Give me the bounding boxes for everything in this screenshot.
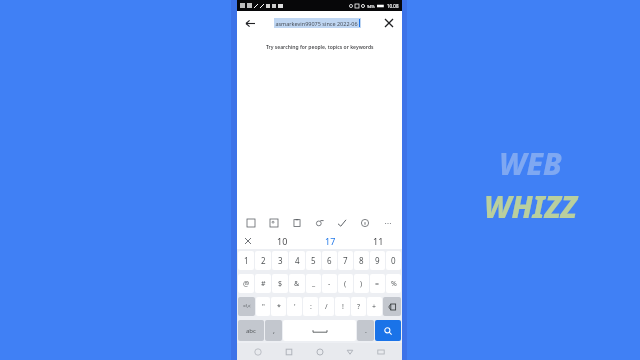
button[interactable]: Clear (381, 15, 397, 31)
staticText: asmarkevin99075 since 2022-06 (275, 20, 358, 27)
button[interactable]: Recents (279, 343, 299, 360)
staticText: / (325, 302, 328, 312)
button[interactable]: 8 (354, 251, 369, 270)
staticText: 4 (295, 255, 300, 266)
staticText: 6 (327, 255, 332, 266)
button[interactable]: 4 (289, 251, 305, 270)
button[interactable]: : (303, 297, 318, 316)
button[interactable]: % (386, 274, 401, 293)
staticText: . (365, 326, 367, 336)
staticText: = (375, 279, 380, 289)
button[interactable]: Back (242, 15, 258, 31)
button[interactable]: 9 (370, 251, 385, 270)
button[interactable]: # (255, 274, 271, 293)
button[interactable]: & (289, 274, 305, 293)
staticText: : (310, 302, 312, 312)
button[interactable]: Info (358, 216, 372, 230)
staticText: * (277, 302, 281, 312)
staticText: @ (243, 279, 250, 289)
button[interactable]: Keyboard (371, 343, 391, 360)
button[interactable]: 5 (306, 251, 321, 270)
button[interactable]: , (265, 320, 282, 341)
staticText: 5 (311, 255, 316, 266)
staticText: 94% (367, 4, 375, 9)
staticText: ) (360, 279, 363, 289)
button[interactable]: / (319, 297, 334, 316)
button[interactable]: Space (283, 320, 356, 341)
button[interactable]: ? (351, 297, 366, 316)
button[interactable]: ( (338, 274, 353, 293)
button[interactable]: GIF (244, 216, 258, 230)
button[interactable]: 6 (322, 251, 337, 270)
staticText: + (372, 302, 377, 312)
button[interactable]: Back (340, 343, 360, 360)
button[interactable]: 0 (386, 251, 401, 270)
button[interactable]: ' (287, 297, 302, 316)
staticText: $ (278, 279, 283, 289)
staticText: 11 (373, 235, 384, 247)
staticText: 17 (325, 235, 336, 247)
staticText: 3 (278, 255, 283, 266)
button[interactable]: 7 (338, 251, 353, 270)
button[interactable]: - (322, 274, 337, 293)
staticText: 9 (375, 255, 380, 266)
button[interactable]: 2 (255, 251, 271, 270)
staticText: 8 (359, 255, 364, 266)
button[interactable]: 3 (272, 251, 288, 270)
button[interactable]: ! (335, 297, 350, 316)
button[interactable]: ) (354, 274, 369, 293)
button[interactable]: _ (306, 274, 321, 293)
button[interactable]: 10 (259, 232, 306, 249)
button[interactable]: =\< (238, 297, 255, 316)
staticText: Try searching for people, topics or keyw… (266, 44, 374, 51)
button[interactable]: = (370, 274, 385, 293)
button[interactable]: Backspace (383, 297, 401, 316)
button[interactable]: abc (238, 320, 264, 341)
button[interactable]: Search (375, 320, 401, 341)
button[interactable]: Edit (335, 216, 349, 230)
button[interactable]: More (381, 216, 395, 230)
staticText: ? (357, 302, 361, 312)
button[interactable]: @ (238, 274, 254, 293)
staticText: WEB (499, 143, 562, 184)
staticText: _ (312, 279, 316, 289)
staticText: =\< (243, 303, 251, 310)
staticText: 2 (261, 255, 266, 266)
button[interactable]: * (271, 297, 286, 316)
button[interactable]: 1 (238, 251, 254, 270)
staticText: 10 (277, 235, 288, 247)
button[interactable]: " (256, 297, 270, 316)
button[interactable]: Voice (237, 232, 259, 249)
staticText: - (328, 279, 331, 289)
button[interactable]: Translate (313, 216, 327, 230)
button[interactable]: Sticker (267, 216, 281, 230)
staticText: , (273, 326, 275, 336)
button[interactable]: + (367, 297, 382, 316)
staticText: ' (294, 302, 296, 312)
staticText: 0 (391, 255, 396, 266)
button[interactable]: 11 (354, 232, 402, 249)
staticText: & (294, 279, 300, 289)
staticText: % (391, 279, 397, 289)
staticText: 1 (244, 255, 249, 266)
staticText: abc (246, 327, 256, 335)
button[interactable]: 17 (306, 232, 354, 249)
button[interactable]: Notifications (248, 343, 268, 360)
staticText: ( (344, 279, 347, 289)
staticText: 10.08 (387, 3, 399, 9)
button[interactable]: . (357, 320, 374, 341)
button[interactable]: $ (272, 274, 288, 293)
staticText: WHIZZ (484, 186, 577, 227)
staticText: # (261, 279, 266, 289)
button[interactable]: Clipboard (290, 216, 304, 230)
button[interactable]: Home (310, 343, 330, 360)
staticText: ! (342, 302, 344, 312)
staticText: 7 (343, 255, 348, 266)
staticText: " (262, 302, 265, 312)
